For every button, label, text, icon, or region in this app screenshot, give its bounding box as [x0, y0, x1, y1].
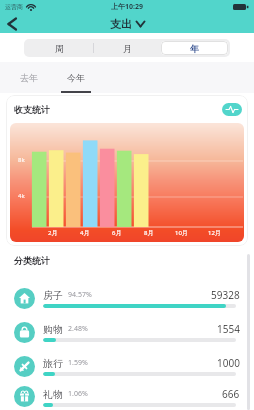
button[interactable]	[0, 14, 24, 33]
staticText: 10月	[175, 229, 188, 237]
staticText: 上午10:29	[111, 2, 143, 12]
staticText: 今年	[67, 72, 85, 83]
staticText: 旅行	[43, 357, 63, 370]
staticText: 支出	[110, 17, 132, 31]
staticText: 购物	[43, 323, 63, 336]
staticText: 12月	[208, 229, 221, 237]
staticText: 去年	[20, 72, 38, 83]
staticText: 月	[123, 43, 132, 54]
button[interactable]: 房子	[0, 281, 254, 315]
staticText: 8k	[18, 156, 25, 164]
staticText: 1000	[217, 356, 240, 370]
staticText: 1.06%	[68, 389, 88, 399]
staticText: 分类统计	[14, 255, 50, 266]
button[interactable]: 年	[161, 41, 228, 55]
staticText: 666	[222, 387, 240, 401]
staticText: 2月	[48, 229, 58, 237]
staticText: 房子	[43, 289, 63, 302]
button[interactable]: 支出	[110, 17, 145, 31]
button[interactable]: 礼物	[0, 383, 254, 410]
staticText: 收支统计	[14, 104, 50, 115]
button[interactable]: 月	[94, 41, 161, 55]
staticText: 4k	[18, 192, 25, 200]
button[interactable]: 去年	[14, 62, 44, 93]
staticText: 6月	[112, 229, 122, 237]
staticText: 礼物	[43, 388, 63, 401]
staticText: 运营商	[5, 3, 23, 11]
button[interactable]: 周	[26, 41, 93, 55]
staticText: 59328	[211, 288, 240, 302]
button[interactable]: 购物	[0, 315, 254, 349]
staticText: 周	[55, 43, 64, 54]
button[interactable]: 旅行	[0, 349, 254, 383]
staticText: 4月	[80, 229, 90, 237]
staticText: 94.57%	[68, 290, 92, 300]
staticText: 2.48%	[68, 324, 88, 334]
staticText: 8月	[144, 229, 154, 237]
staticText: 年	[190, 43, 199, 54]
staticText: 1554	[217, 322, 240, 336]
staticText: 1.59%	[68, 358, 88, 368]
button[interactable]: 今年	[61, 62, 91, 93]
button[interactable]	[222, 103, 242, 116]
